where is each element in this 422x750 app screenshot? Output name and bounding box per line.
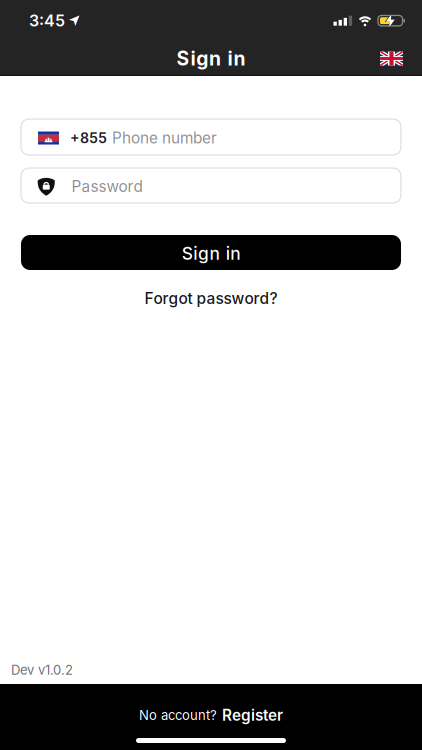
button[interactable]: Change language [380, 51, 403, 65]
button[interactable]: Forgot password? [144, 289, 277, 308]
staticText: Sign in [177, 47, 245, 70]
staticText: Dev v1.0.2 [11, 662, 73, 678]
button[interactable]: Password [21, 168, 401, 203]
staticText: Forgot password? [144, 289, 277, 308]
staticText: Register [222, 706, 283, 725]
button[interactable]: Phone number [21, 119, 401, 155]
staticText: +855 [70, 129, 107, 146]
staticText: Sign in [182, 243, 240, 264]
staticText: Phone number [112, 129, 217, 147]
button[interactable]: No account? [139, 706, 283, 725]
staticText: 3:45 [29, 11, 65, 30]
button[interactable]: Sign in [21, 235, 401, 270]
staticText: No account? [139, 707, 217, 723]
staticText: Password [71, 177, 142, 196]
